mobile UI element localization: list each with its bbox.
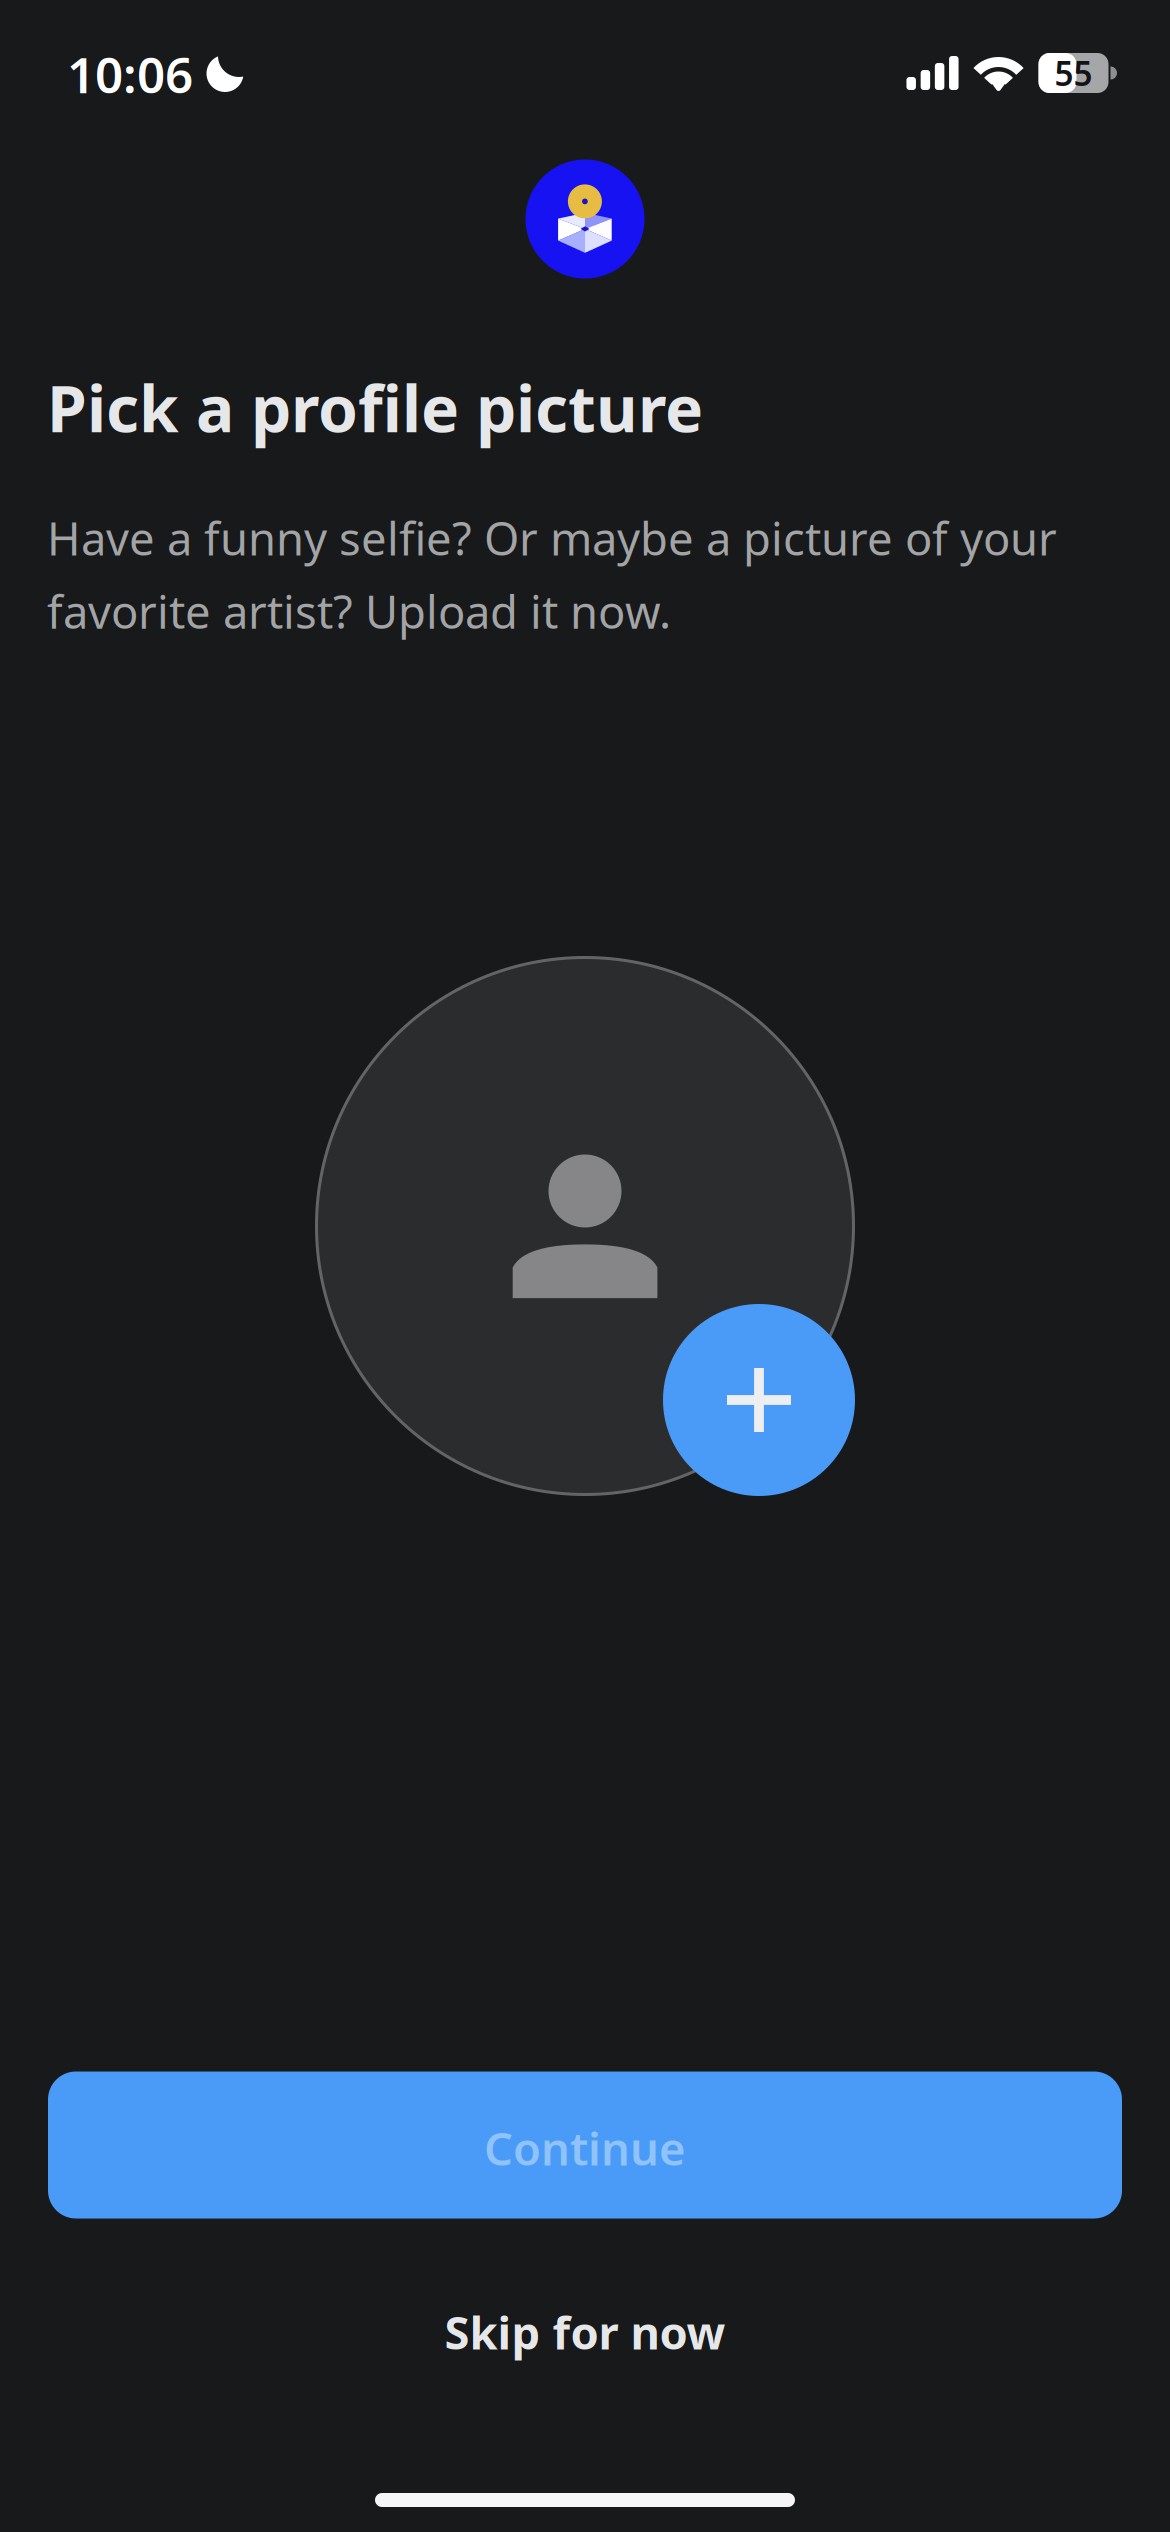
staticText: Skip for now (444, 2302, 725, 2362)
button[interactable]: Skip for now (48, 2277, 1122, 2387)
button[interactable]: Add profile picture (663, 1304, 855, 1496)
staticText: Continue (484, 2118, 686, 2178)
staticText: 10:06 (67, 41, 193, 107)
staticText: 55 (1054, 51, 1092, 95)
staticText: Pick a profile picture (47, 365, 703, 450)
staticText: Have a funny selfie? Or maybe a picture … (47, 508, 1057, 641)
button[interactable]: Continue (48, 2071, 1122, 2218)
